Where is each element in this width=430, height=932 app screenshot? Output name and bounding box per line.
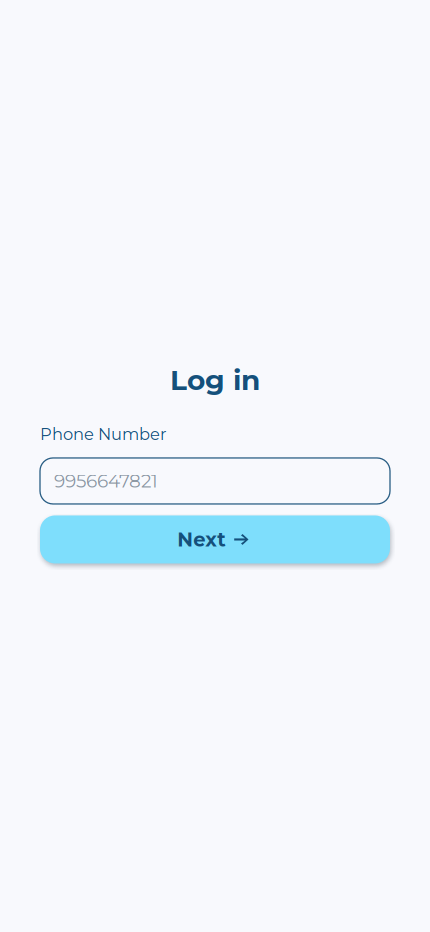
- button[interactable]: 9956647821: [40, 458, 390, 504]
- staticText: Log in: [170, 363, 260, 397]
- staticText: 9956647821: [54, 470, 158, 492]
- staticText: Phone Number: [40, 424, 167, 444]
- button[interactable]: Next: [40, 515, 390, 563]
- staticText: Next: [177, 528, 225, 551]
